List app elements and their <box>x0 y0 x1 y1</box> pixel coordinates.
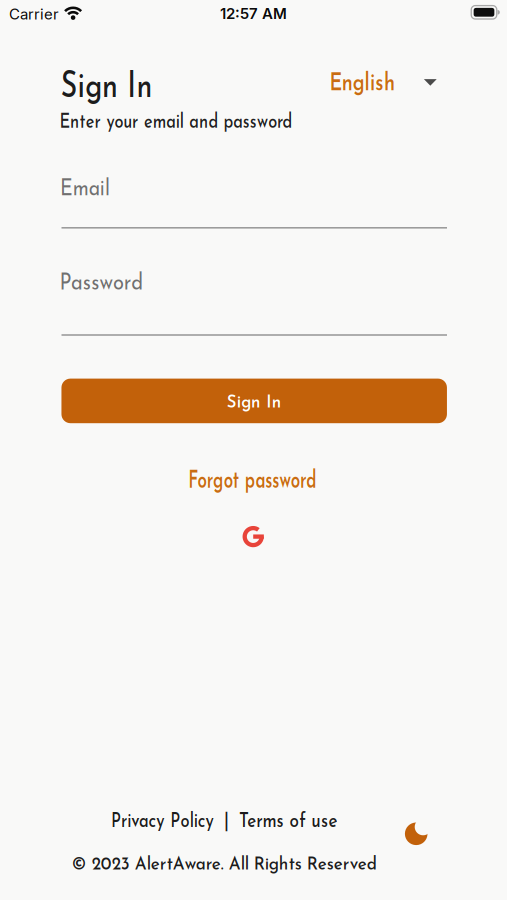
staticText: Sign In <box>224 394 285 412</box>
staticText: Password <box>59 272 159 296</box>
staticText: © 2023 AlertAware. All Rights Reserved <box>72 857 377 874</box>
staticText: 12:57 AM <box>220 4 287 22</box>
staticText: Forgot password <box>162 470 344 494</box>
button[interactable]: Privacy Policy <box>96 811 228 832</box>
staticText: Email <box>60 178 119 201</box>
button[interactable]: Toggle dark mode <box>405 822 427 845</box>
button[interactable]: Sign in with Google <box>242 526 264 547</box>
button[interactable]: Terms of use <box>228 811 349 832</box>
staticText: English <box>320 71 404 96</box>
button[interactable]: English <box>330 66 437 98</box>
staticText: Privacy Policy <box>96 811 228 832</box>
button[interactable]: Forgot password <box>162 470 344 494</box>
staticText: Sign In <box>61 69 181 106</box>
staticText: Terms of use <box>228 811 349 832</box>
staticText: Carrier <box>9 5 59 23</box>
button[interactable]: Sign In <box>61 379 447 423</box>
staticText: Enter your email and password <box>60 112 352 133</box>
staticText: | <box>224 812 229 832</box>
